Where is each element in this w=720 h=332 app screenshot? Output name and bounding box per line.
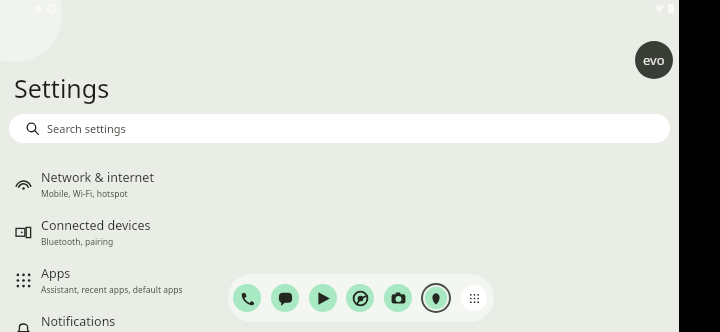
staticText: Network & internet xyxy=(41,169,154,186)
staticText: Notifications xyxy=(41,313,116,330)
button[interactable]: Maps xyxy=(421,283,451,313)
button[interactable]: Phone xyxy=(233,284,261,312)
button[interactable]: Network & internet xyxy=(0,161,679,207)
button[interactable]: Apps xyxy=(0,257,679,303)
button[interactable]: Notifications xyxy=(0,305,679,332)
staticText: Search settings xyxy=(47,121,126,136)
button[interactable]: All apps xyxy=(461,285,487,311)
button[interactable]: Account xyxy=(635,41,673,79)
staticText: Apps xyxy=(41,265,71,282)
staticText: Bluetooth, pairing xyxy=(41,236,114,248)
staticText: Assistant, recent apps, default apps xyxy=(41,284,183,296)
button[interactable]: Play Store xyxy=(309,284,337,312)
staticText: Connected devices xyxy=(41,217,151,234)
button[interactable]: Messages xyxy=(271,284,299,312)
staticText: Mobile, Wi-Fi, hotspot xyxy=(41,188,128,200)
button[interactable]: Chrome xyxy=(346,284,374,312)
button[interactable]: Camera xyxy=(384,284,412,312)
button[interactable]: Connected devices xyxy=(0,209,679,255)
staticText: Settings xyxy=(14,71,110,105)
button[interactable]: Search settings xyxy=(9,114,670,143)
staticText: evo xyxy=(643,51,665,69)
